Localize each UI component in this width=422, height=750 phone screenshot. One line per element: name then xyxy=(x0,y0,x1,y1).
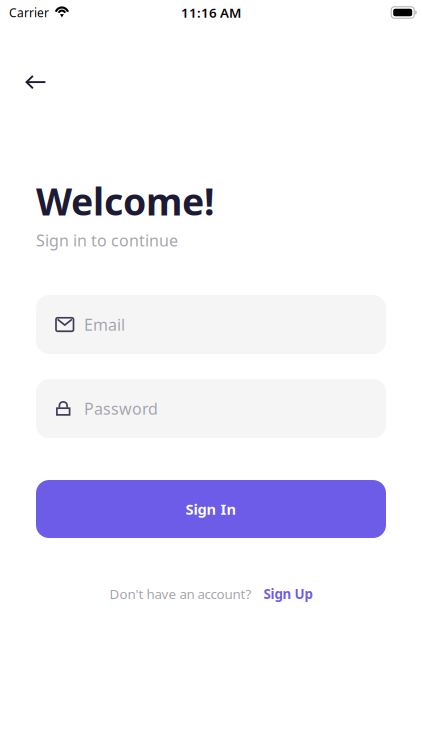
staticText: Sign Up xyxy=(263,585,312,603)
staticText: Sign In xyxy=(185,499,236,519)
staticText: 11:16 AM xyxy=(181,4,241,21)
staticText: Password xyxy=(84,398,158,419)
button[interactable]: Password xyxy=(36,379,386,438)
button[interactable]: Back xyxy=(17,67,54,97)
staticText: Carrier xyxy=(9,4,49,20)
staticText: Email xyxy=(84,314,125,335)
staticText: Welcome! xyxy=(36,176,215,226)
button[interactable]: Don't have an account? xyxy=(109,585,312,603)
staticText: Don't have an account? xyxy=(109,585,251,603)
staticText: Sign in to continue xyxy=(36,230,178,251)
button[interactable]: Email xyxy=(36,295,386,354)
button[interactable]: Sign In xyxy=(36,480,386,538)
